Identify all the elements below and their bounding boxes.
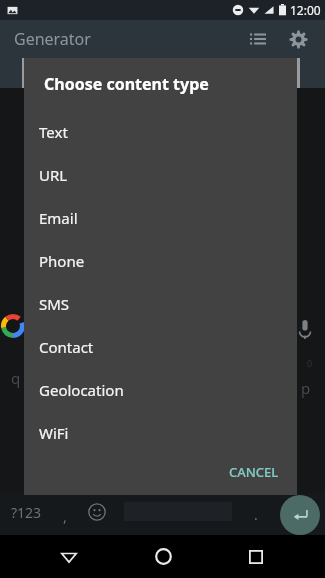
staticText: CANCEL [229, 463, 279, 481]
button[interactable]: Settings [281, 22, 315, 56]
button[interactable]: . [254, 505, 258, 524]
staticText: p [301, 378, 311, 398]
button[interactable]: URL [24, 153, 297, 196]
staticText: Generator [14, 28, 91, 50]
staticText: 0 [307, 357, 313, 369]
staticText: Geolocation [39, 380, 124, 400]
button[interactable]: , [63, 507, 67, 526]
staticText: q [11, 368, 21, 388]
button[interactable]: Email [24, 196, 297, 239]
button[interactable]: CANCEL [219, 455, 289, 489]
staticText: Email [39, 208, 78, 228]
button[interactable]: Home [139, 535, 187, 578]
staticText: 12:00 [290, 2, 321, 18]
button[interactable]: Back [45, 535, 93, 578]
staticText: URL [39, 165, 68, 185]
button[interactable]: History list [241, 22, 275, 56]
button[interactable]: SMS [24, 282, 297, 325]
button[interactable]: Contact [24, 325, 297, 368]
button[interactable]: Recents [232, 535, 280, 578]
staticText: WiFi [39, 423, 69, 443]
button[interactable]: WiFi [24, 411, 297, 454]
button[interactable]: ?123 [11, 503, 42, 522]
button[interactable]: Text [24, 110, 297, 153]
staticText: Phone [39, 251, 85, 271]
staticText: Contact [39, 337, 94, 357]
staticText: Choose content type [44, 73, 209, 95]
staticText: Text [39, 122, 68, 142]
button[interactable]: Geolocation [24, 368, 297, 411]
button[interactable]: Enter [280, 495, 320, 535]
button[interactable]: Phone [24, 239, 297, 282]
button[interactable]: Emoji [88, 503, 106, 521]
staticText: SMS [39, 294, 70, 314]
